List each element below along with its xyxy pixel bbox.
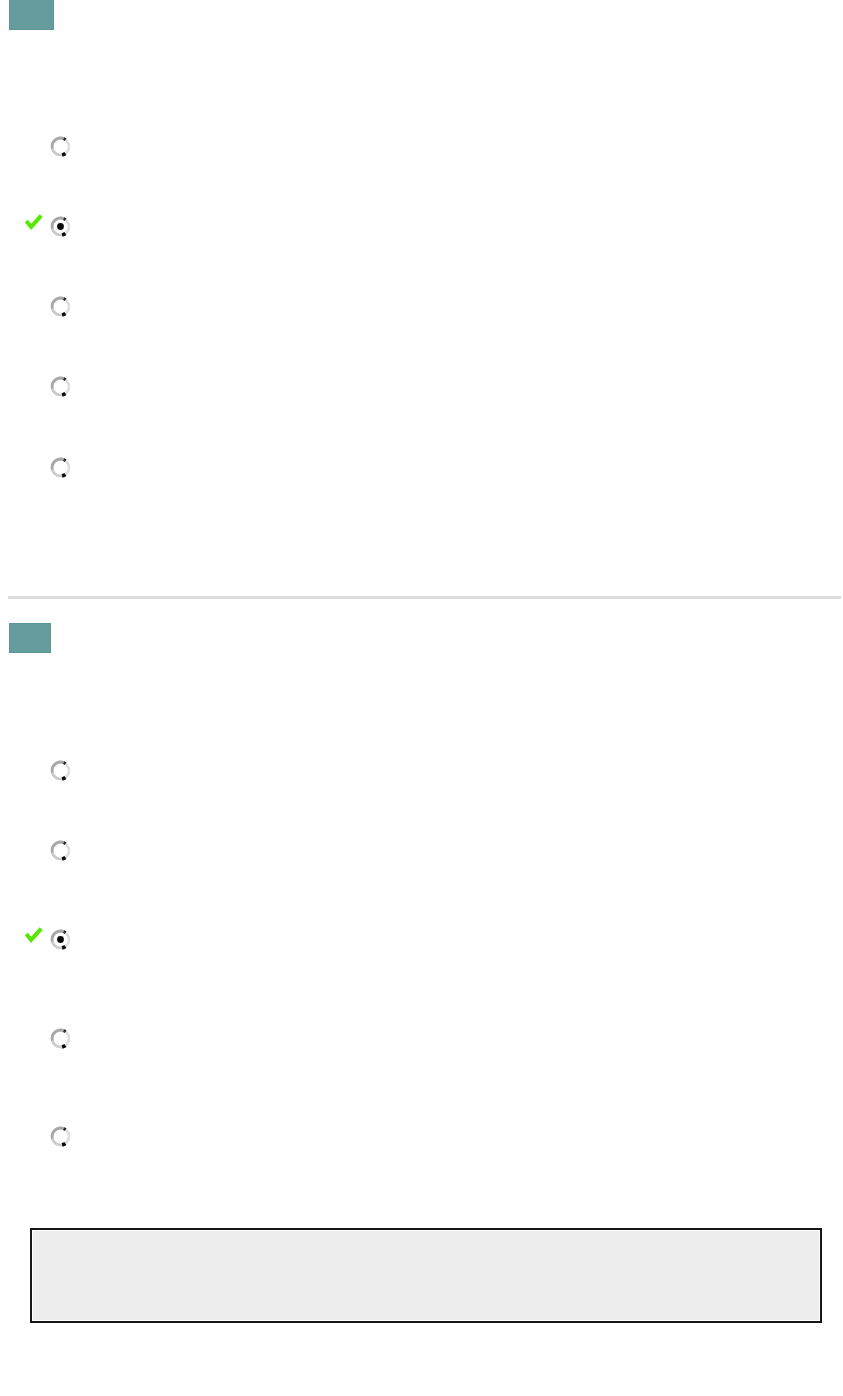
button[interactable]: Answer choice: [0, 296, 843, 317]
button[interactable]: Answer choice: [0, 1126, 843, 1147]
button[interactable]: Answer choice: [0, 376, 843, 397]
button[interactable]: Answer choice: [0, 760, 843, 781]
button[interactable]: Answer choice: [0, 136, 843, 157]
button[interactable]: Answer choice: [0, 840, 843, 861]
button[interactable]: Selected answer: [0, 929, 843, 950]
button[interactable]: Answer choice: [0, 1028, 843, 1049]
button[interactable]: Answer choice: [0, 457, 843, 478]
button[interactable]: Selected answer: [0, 216, 843, 237]
